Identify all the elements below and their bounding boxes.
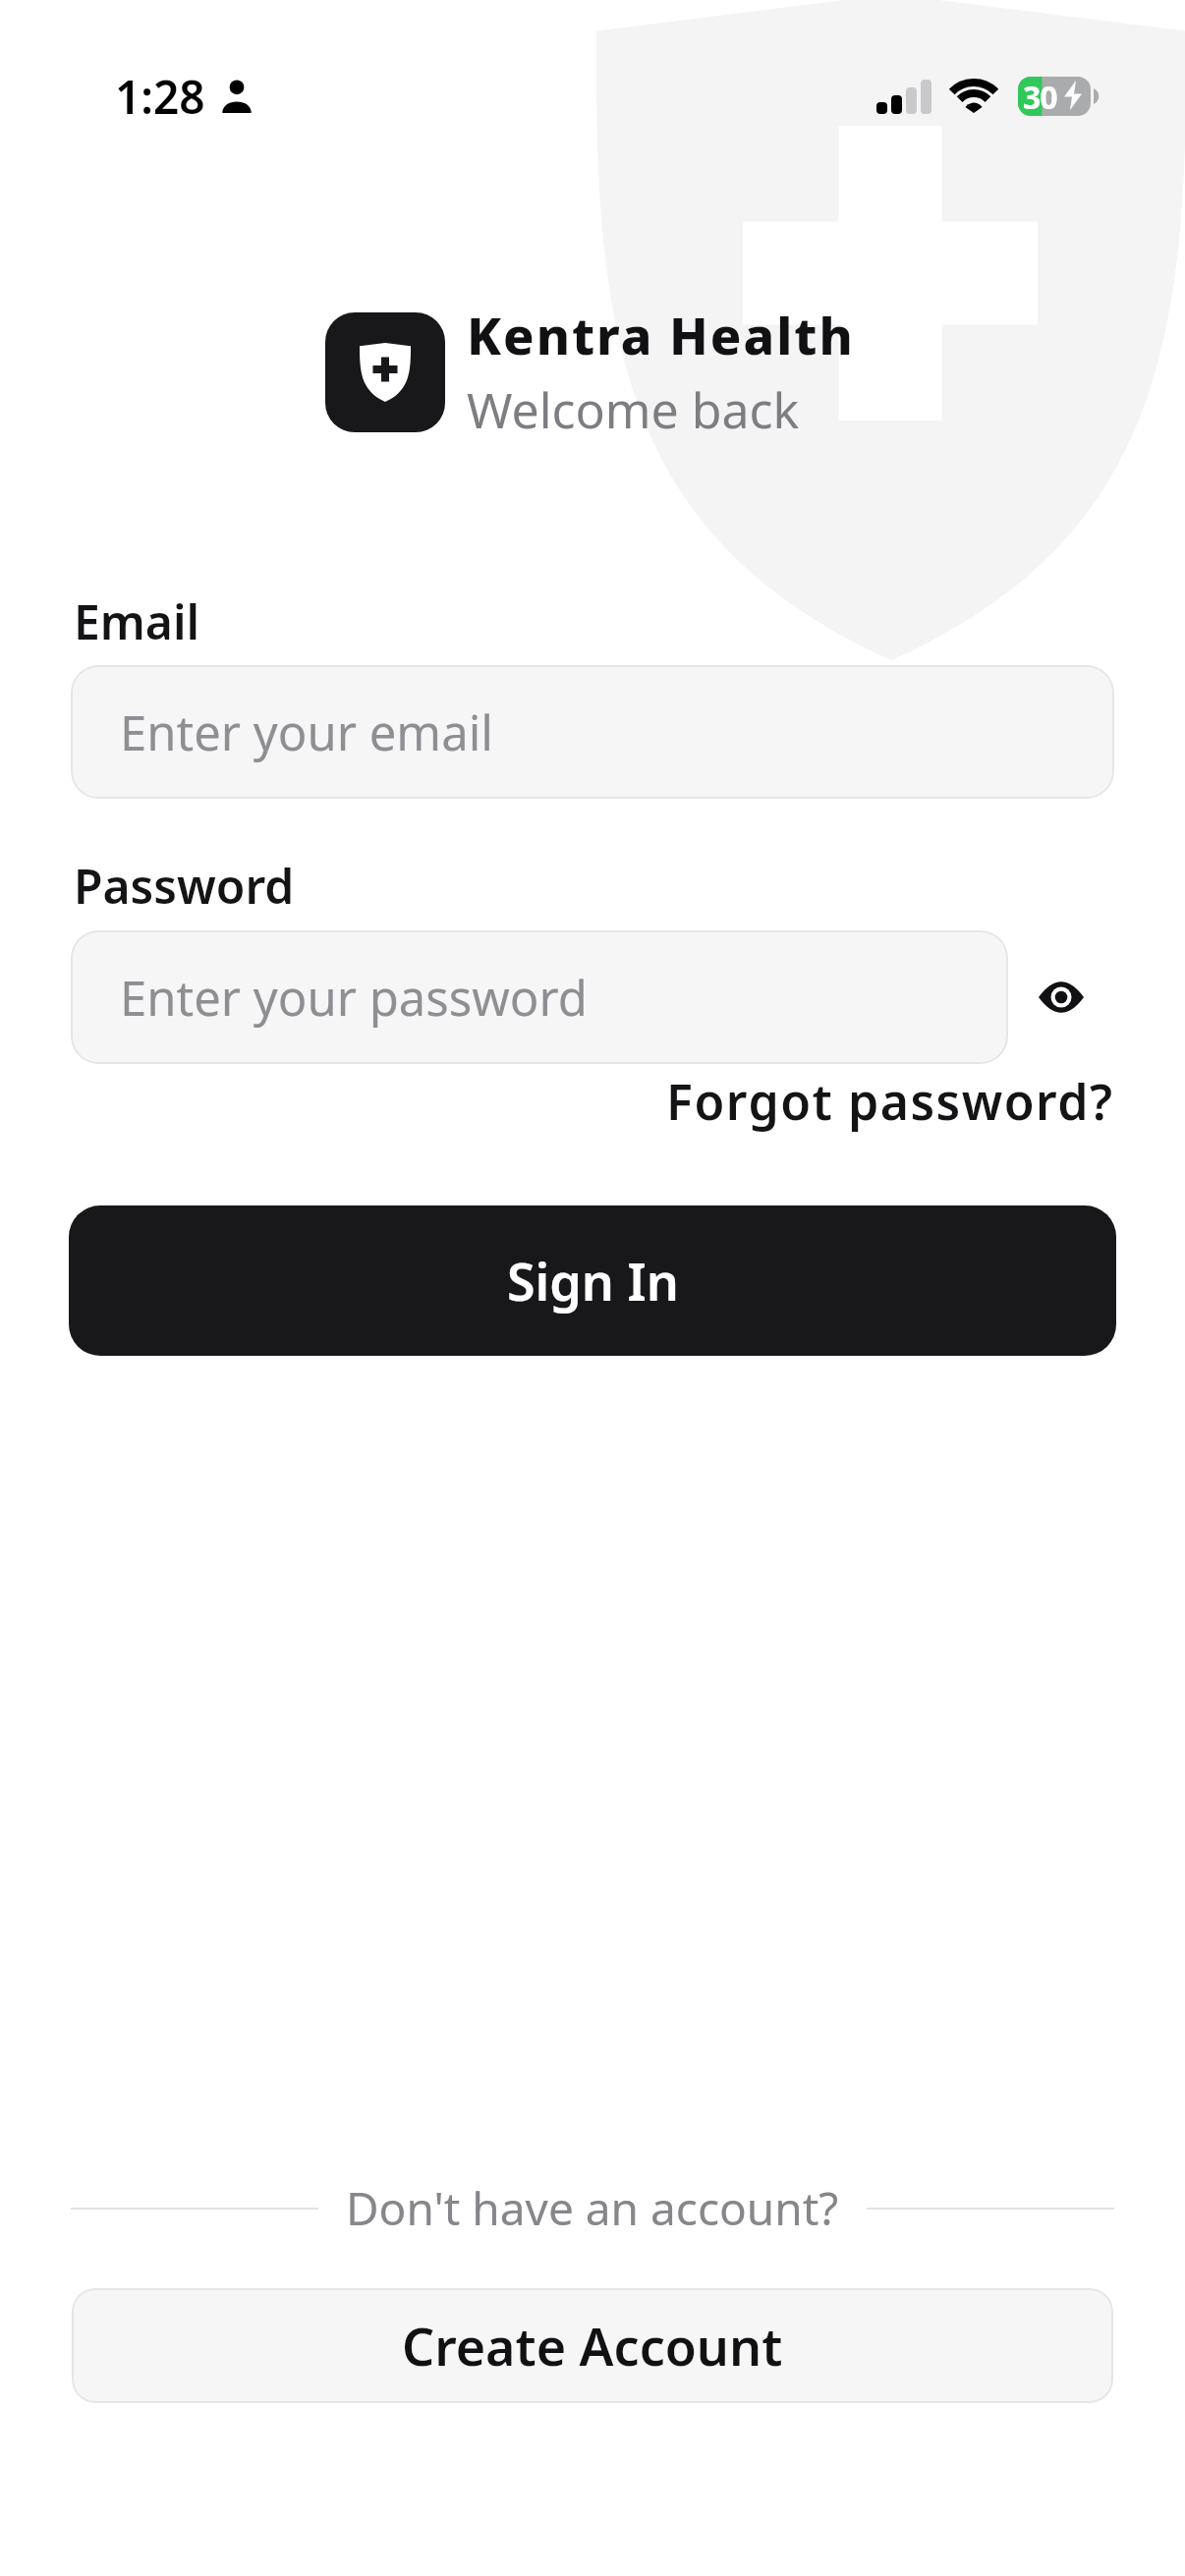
staticText: Kentra Health bbox=[467, 300, 855, 369]
staticText: 1:28 bbox=[115, 66, 205, 128]
button[interactable]: Enter your email bbox=[71, 665, 1114, 799]
staticText: Welcome back bbox=[467, 376, 800, 443]
button[interactable]: Create Account bbox=[72, 2288, 1113, 2403]
staticText: Password bbox=[74, 854, 295, 918]
staticText: 30 bbox=[1023, 76, 1057, 117]
staticText: Enter your password bbox=[120, 965, 588, 1031]
staticText: Don't have an account? bbox=[346, 2177, 839, 2239]
staticText: Create Account bbox=[402, 2311, 783, 2380]
button[interactable]: Enter your password bbox=[71, 930, 1008, 1064]
staticText: Forgot password? bbox=[666, 1068, 1114, 1135]
staticText: Enter your email bbox=[120, 700, 493, 765]
button[interactable]: Forgot password? bbox=[666, 1068, 1114, 1135]
button[interactable]: Sign In bbox=[69, 1205, 1116, 1356]
staticText: Sign In bbox=[507, 1246, 679, 1316]
button[interactable] bbox=[1008, 948, 1114, 1046]
staticText: Email bbox=[74, 589, 200, 653]
